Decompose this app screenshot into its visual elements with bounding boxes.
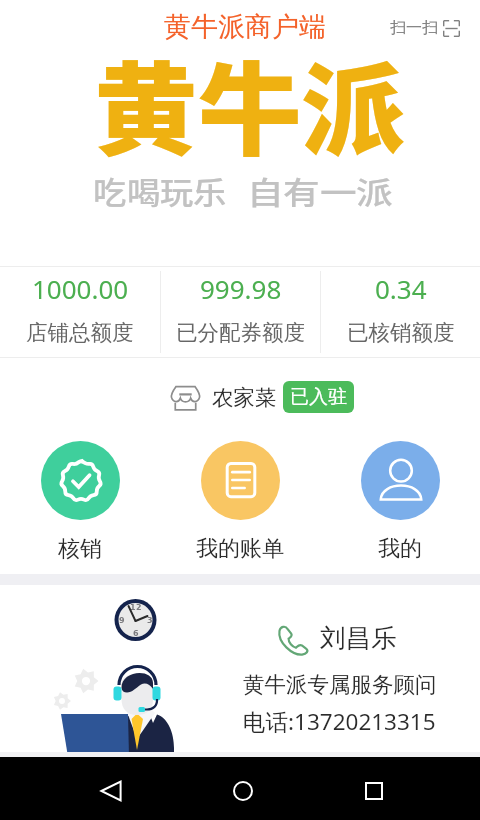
button[interactable]: 我的账单 — [160, 418, 320, 563]
button[interactable]: 我的 — [320, 418, 480, 563]
button[interactable]: 核销 — [0, 418, 160, 563]
staticText: 999.98 — [200, 271, 282, 306]
button[interactable]: 拨打电话 刘昌乐 — [273, 622, 397, 654]
staticText: 农家菜 — [212, 384, 277, 411]
staticText: 我的 — [378, 535, 422, 563]
staticText: 已分配券额度 — [176, 319, 305, 346]
staticText: 扫一扫 — [390, 18, 438, 38]
button[interactable]: 999.98 — [161, 267, 320, 346]
staticText: 核销 — [58, 535, 102, 563]
staticText: 0.34 — [375, 271, 427, 306]
button[interactable]: 已入驻 — [283, 381, 354, 413]
staticText: 黄牛派专属服务顾问 — [243, 671, 437, 698]
staticText: 黄牛派商户端 — [164, 10, 326, 44]
staticText: 已核销额度 — [347, 319, 455, 346]
staticText: 电话:13720213315 — [243, 706, 436, 737]
staticText: 我的账单 — [196, 535, 284, 563]
button[interactable]: 扫一扫 — [390, 18, 460, 38]
staticText: 店铺总额度 — [26, 319, 134, 346]
staticText: 刘昌乐 — [320, 622, 397, 654]
button[interactable]: 0.34 — [321, 267, 480, 346]
button[interactable]: 1000.00 — [0, 267, 160, 346]
button[interactable]: Home — [213, 761, 273, 820]
staticText: 1000.00 — [32, 271, 129, 306]
staticText: 已入驻 — [290, 385, 347, 409]
button[interactable]: Recents — [344, 761, 404, 820]
button[interactable]: Back — [81, 761, 141, 820]
